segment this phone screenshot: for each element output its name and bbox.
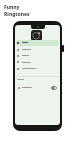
staticText: Funny bbox=[4, 4, 20, 11]
button[interactable] bbox=[16, 40, 59, 46]
button[interactable] bbox=[22, 87, 32, 88]
button[interactable] bbox=[22, 62, 31, 63]
button[interactable] bbox=[51, 86, 57, 90]
staticText: Ringtones bbox=[4, 11, 30, 18]
button[interactable] bbox=[22, 55, 29, 56]
button[interactable] bbox=[31, 30, 42, 41]
button[interactable] bbox=[22, 42, 28, 43]
button[interactable] bbox=[22, 68, 36, 69]
button[interactable] bbox=[22, 49, 31, 50]
